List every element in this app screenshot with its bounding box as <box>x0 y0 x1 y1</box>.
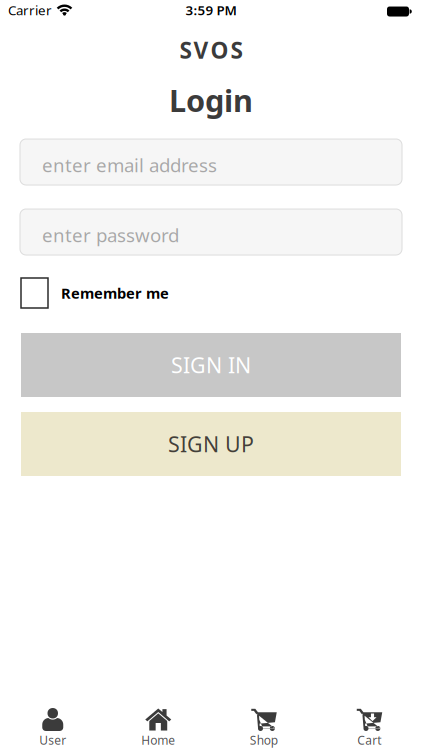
staticText: Login <box>169 80 253 120</box>
button[interactable]: Cart <box>316 708 422 745</box>
staticText: Shop <box>250 732 278 748</box>
staticText: Remember me <box>61 283 169 303</box>
staticText: Cart <box>357 732 381 748</box>
staticText: enter password <box>42 223 179 247</box>
button[interactable]: enter email address <box>20 139 402 185</box>
button[interactable]: Shop <box>211 708 316 745</box>
staticText: Carrier <box>8 1 52 19</box>
staticText: S V O S <box>179 35 242 65</box>
staticText: Home <box>141 732 175 748</box>
staticText: SIGN IN <box>171 351 251 379</box>
button[interactable]: Remember me <box>0 278 422 308</box>
staticText: enter email address <box>42 153 217 177</box>
button[interactable]: SIGN IN <box>21 333 401 397</box>
button[interactable]: User <box>0 708 105 745</box>
button[interactable]: SIGN UP <box>21 412 401 476</box>
staticText: 3:59 PM <box>185 1 236 19</box>
button[interactable]: Home <box>105 708 211 745</box>
staticText: User <box>39 732 66 748</box>
staticText: SIGN UP <box>168 430 254 458</box>
button[interactable]: enter password <box>20 209 402 255</box>
